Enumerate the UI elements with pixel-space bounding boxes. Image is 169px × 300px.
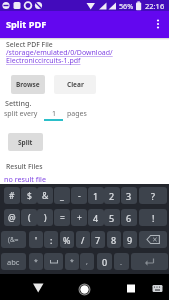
- button[interactable]: [44, 253, 63, 270]
- button[interactable]: %: [60, 231, 74, 248]
- staticText: /storage/emulated/0/Download/: [6, 48, 113, 58]
- staticText: 0: [102, 256, 108, 268]
- button[interactable]: 3: [121, 187, 137, 204]
- button[interactable]: abc: [1, 253, 26, 270]
- staticText: 1: [52, 109, 57, 119]
- staticText: /: [81, 234, 85, 246]
- button[interactable]: Clear: [54, 75, 96, 94]
- button[interactable]: _: [54, 187, 70, 204]
- staticText: abc: [7, 257, 20, 267]
- staticText: (: [28, 212, 31, 224]
- button[interactable]: 2: [104, 187, 120, 204]
- staticText: Clear: [67, 80, 84, 89]
- button[interactable]: *: [65, 253, 79, 270]
- button[interactable]: 1: [88, 187, 104, 204]
- staticText: Result Files: [6, 162, 43, 171]
- button[interactable]: +: [71, 209, 87, 226]
- staticText: pages: [67, 109, 87, 119]
- staticText: Electroniccircuits-1.pdf: [6, 56, 81, 66]
- button[interactable]: [73, 277, 95, 299]
- button[interactable]: 0: [97, 253, 112, 270]
- staticText: Setting.: [5, 98, 32, 108]
- button[interactable]: 7: [91, 231, 105, 248]
- staticText: no result file: [4, 174, 46, 184]
- staticText: ,: [86, 257, 88, 267]
- staticText: -: [78, 190, 81, 202]
- button[interactable]: [27, 276, 49, 298]
- button[interactable]: #: [4, 187, 20, 204]
- button[interactable]: [131, 253, 168, 270]
- button[interactable]: .: [114, 253, 129, 270]
- staticText: =: [60, 212, 65, 224]
- staticText: 56%: [119, 1, 134, 11]
- staticText: ': [35, 234, 38, 246]
- staticText: 4: [93, 212, 99, 224]
- staticText: 6: [126, 212, 132, 224]
- button[interactable]: 5: [104, 209, 120, 226]
- button[interactable]: Browse: [11, 75, 45, 94]
- staticText: @: [8, 212, 16, 224]
- staticText: ): [44, 212, 47, 224]
- button[interactable]: 9: [123, 231, 137, 248]
- button[interactable]: ): [37, 209, 53, 226]
- button[interactable]: [150, 279, 166, 295]
- staticText: $: [27, 190, 32, 202]
- staticText: Select PDF File: [6, 40, 53, 49]
- staticText: :: [50, 234, 53, 246]
- button[interactable]: (&=: [1, 231, 26, 248]
- button[interactable]: 4: [88, 209, 104, 226]
- staticText: 7: [95, 234, 101, 246]
- staticText: 9: [127, 234, 133, 246]
- button[interactable]: (: [21, 209, 37, 226]
- button[interactable]: 8: [107, 231, 121, 248]
- staticText: +: [77, 212, 82, 224]
- staticText: Browse: [16, 80, 40, 89]
- button[interactable]: !: [139, 209, 167, 226]
- staticText: !: [152, 212, 155, 224]
- staticText: (&=: [8, 235, 19, 244]
- staticText: _: [60, 190, 64, 202]
- staticText: 22:16: [145, 1, 165, 11]
- button[interactable]: [139, 231, 167, 248]
- button[interactable]: 6: [121, 209, 137, 226]
- button[interactable]: Split: [8, 133, 43, 151]
- staticText: &: [42, 190, 49, 202]
- button[interactable]: $: [21, 187, 37, 204]
- staticText: 8: [111, 234, 117, 246]
- button[interactable]: @: [4, 209, 20, 226]
- staticText: #: [9, 190, 15, 202]
- button[interactable]: =: [54, 209, 70, 226]
- button[interactable]: *: [29, 253, 43, 270]
- button[interactable]: ,: [80, 253, 94, 270]
- button[interactable]: /: [76, 231, 90, 248]
- button[interactable]: :: [44, 231, 58, 248]
- staticText: 5: [109, 212, 115, 224]
- staticText: Split: [18, 138, 33, 147]
- staticText: *: [70, 257, 74, 267]
- staticText: %: [63, 234, 71, 246]
- staticText: .: [120, 257, 123, 267]
- button[interactable]: [120, 277, 142, 299]
- staticText: *: [34, 257, 38, 267]
- button[interactable]: &: [37, 187, 53, 204]
- staticText: 1: [93, 190, 99, 202]
- button[interactable]: -: [71, 187, 87, 204]
- button[interactable]: ': [29, 231, 43, 248]
- button[interactable]: ?: [139, 187, 167, 204]
- staticText: 2: [109, 190, 115, 202]
- staticText: Split PDF: [6, 18, 47, 31]
- staticText: split every: [4, 109, 38, 119]
- staticText: ?: [151, 190, 155, 202]
- staticText: 3: [126, 190, 132, 202]
